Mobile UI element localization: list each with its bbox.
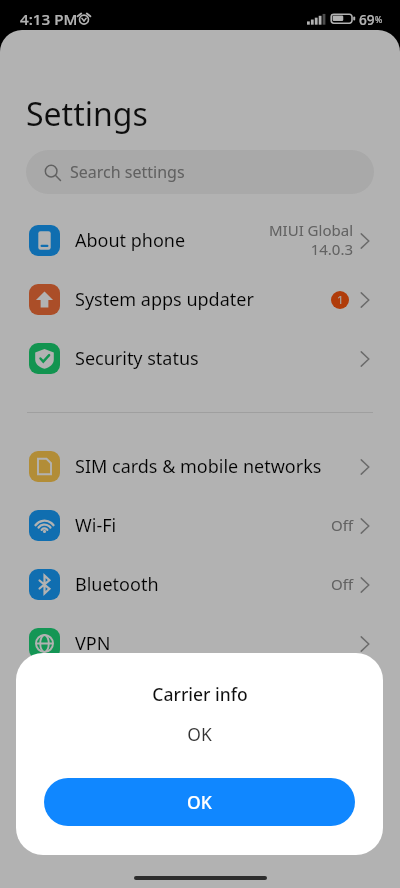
button[interactable]: Bluetooth (0, 555, 400, 614)
staticText: Off (330, 574, 353, 594)
staticText: MIUI Global 14.0.3 (268, 220, 353, 259)
button[interactable]: Search settings (26, 150, 374, 194)
button[interactable]: Security status (0, 329, 400, 388)
staticText: Off (330, 515, 353, 535)
staticText: 1 (337, 292, 344, 308)
button[interactable]: Always-on display & Lock screen (0, 673, 400, 732)
staticText: Bluetooth (75, 572, 159, 597)
staticText: 4:13 PM (20, 9, 78, 30)
staticText: Security status (75, 346, 199, 371)
staticText: Settings (26, 92, 148, 136)
staticText: About phone (75, 228, 186, 253)
button[interactable]: About phone (0, 211, 400, 270)
button[interactable]: SIM cards & mobile networks (0, 437, 400, 496)
button[interactable]: Wi-Fi (0, 496, 400, 555)
staticText: Wi-Fi (75, 513, 117, 538)
staticText: VPN (75, 631, 111, 656)
staticText: SIM cards & mobile networks (75, 454, 322, 479)
staticText: OK (187, 790, 212, 814)
staticText: Carrier info (152, 682, 248, 706)
button[interactable]: VPN (0, 614, 400, 673)
staticText: Search settings (70, 161, 185, 183)
staticText: OK (187, 722, 212, 746)
button[interactable]: System apps updater (0, 270, 400, 329)
staticText: 69 (359, 10, 375, 29)
staticText: System apps updater (75, 287, 254, 312)
staticText: % (375, 14, 383, 26)
button[interactable]: OK (44, 778, 355, 826)
staticText: Always-on display & Lock screen (75, 690, 347, 715)
